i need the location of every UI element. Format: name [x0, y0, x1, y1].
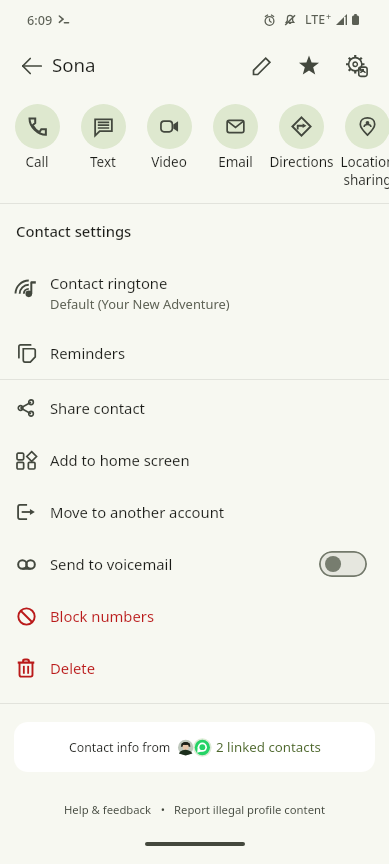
button[interactable]: Report illegal profile content — [174, 802, 326, 817]
staticText: Send to voicemail — [50, 554, 173, 574]
staticText: Video — [151, 153, 187, 171]
button[interactable]: Send to voicemail — [0, 538, 389, 590]
staticText: Directions — [269, 153, 334, 171]
button[interactable]: Add to home screen — [0, 434, 389, 486]
button[interactable]: Text — [70, 94, 136, 171]
staticText: Move to another account — [50, 502, 225, 522]
staticText: Location sharing — [340, 153, 389, 189]
staticText: Reminders — [50, 343, 125, 363]
button[interactable]: Edit — [241, 46, 281, 86]
staticText: LTE — [305, 11, 326, 28]
staticText: Block numbers — [50, 606, 155, 626]
button[interactable]: Contact info from — [14, 722, 375, 772]
button[interactable]: Block numbers — [0, 590, 389, 642]
staticText: + — [326, 10, 332, 22]
button[interactable]: Favorite — [289, 46, 329, 86]
button[interactable]: Contact ringtone — [0, 258, 389, 327]
button[interactable]: Help & feedback — [64, 802, 152, 817]
button[interactable]: Move to another account — [0, 486, 389, 538]
staticText: Add to home screen — [50, 450, 190, 470]
staticText: Call — [25, 153, 49, 171]
button[interactable]: Directions — [268, 94, 334, 171]
button[interactable]: Reminders — [0, 327, 389, 379]
staticText: • — [152, 802, 174, 817]
staticText: Text — [90, 153, 116, 171]
staticText: Share contact — [50, 398, 145, 418]
button[interactable]: Send to voicemail toggle — [319, 551, 367, 577]
staticText: Contact info from — [69, 739, 174, 756]
staticText: 6:09 — [27, 11, 53, 28]
button[interactable]: Call — [4, 94, 70, 171]
button[interactable]: Delete — [0, 642, 389, 694]
staticText: 2 linked contacts — [216, 738, 321, 756]
button[interactable]: Video — [136, 94, 202, 171]
staticText: Delete — [50, 658, 95, 678]
button[interactable]: Settings — [337, 46, 377, 86]
button[interactable]: Email — [202, 94, 268, 171]
button[interactable]: Share contact — [0, 382, 389, 434]
staticText: Contact settings — [16, 221, 132, 241]
button[interactable]: Back — [12, 46, 52, 86]
staticText: Contact ringtone — [50, 273, 168, 293]
button[interactable]: Location sharing — [334, 94, 389, 189]
staticText: Default (Your New Adventure) — [50, 295, 230, 313]
staticText: Sona — [52, 52, 96, 77]
staticText: Email — [218, 153, 253, 171]
